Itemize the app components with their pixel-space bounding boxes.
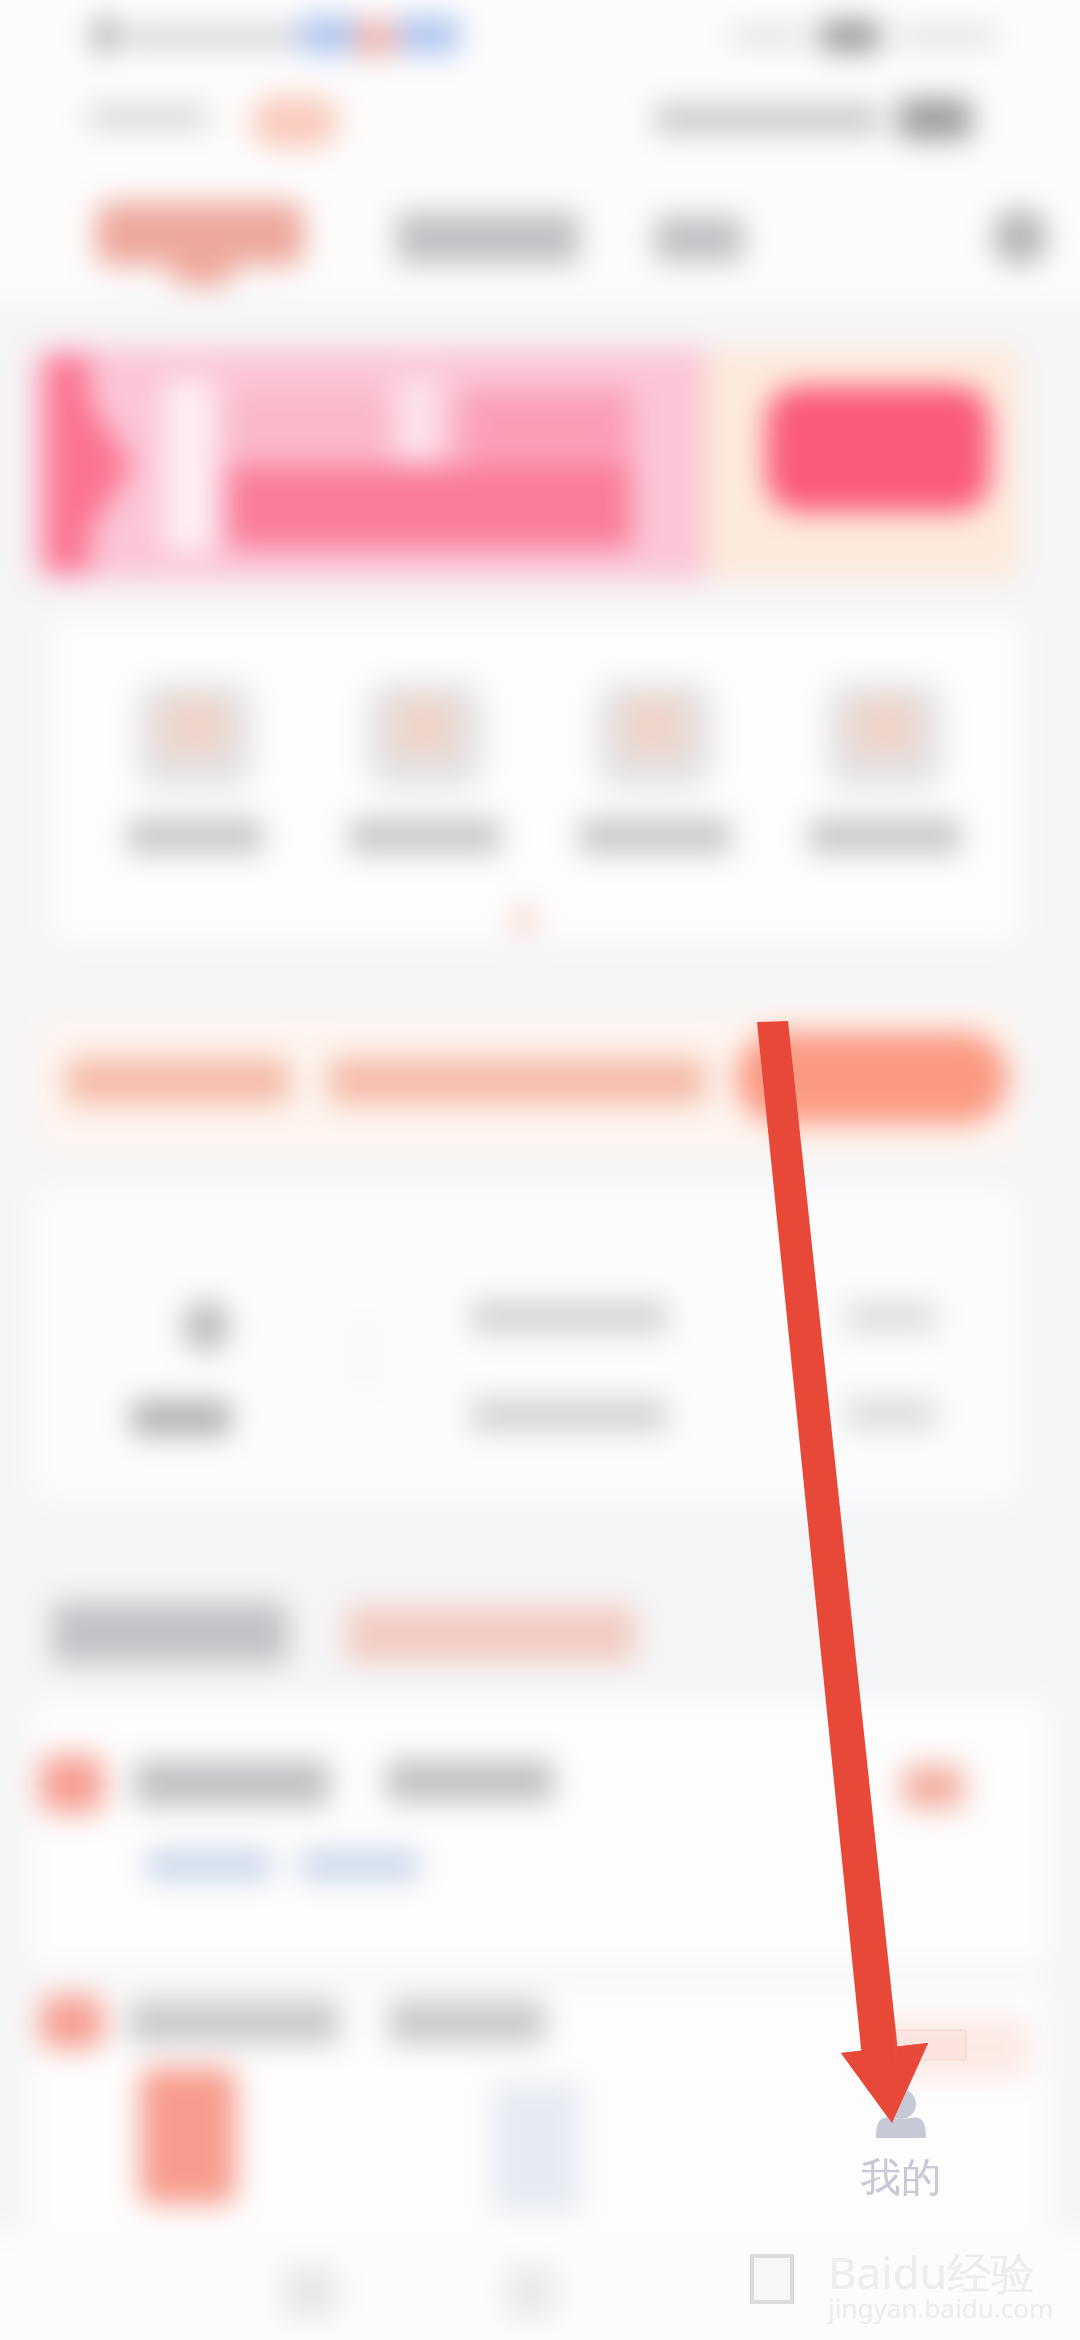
staticText: jingyan.baidu.com	[828, 2290, 1054, 2325]
button[interactable]: 我的	[826, 2090, 976, 2202]
staticText: 我的	[861, 2152, 941, 2202]
staticText: Baidu经验	[828, 2242, 1035, 2302]
